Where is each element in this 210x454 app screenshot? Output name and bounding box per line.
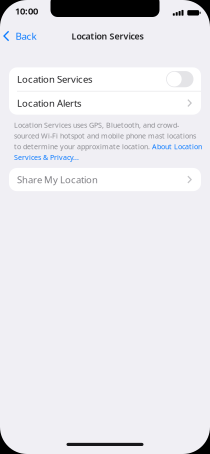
staticText: Location Services <box>71 30 143 42</box>
button[interactable]: Back <box>0 24 42 48</box>
staticText: sourced Wi-Fi hotspot and mobile phone m… <box>14 131 196 140</box>
staticText: Services & Privacy... <box>14 152 79 162</box>
button[interactable]: About Location <box>152 142 202 151</box>
button[interactable]: Location Services <box>9 67 201 91</box>
staticText: to determine your approximate location. <box>14 142 152 151</box>
button[interactable]: Share My Location <box>0 168 210 191</box>
staticText: Back <box>15 29 36 43</box>
staticText: Location Services uses GPS, Bluetooth, a… <box>14 120 179 130</box>
button[interactable]: Services & Privacy... <box>14 152 79 162</box>
staticText: About Location <box>152 142 202 151</box>
staticText: Location Alerts <box>17 97 82 109</box>
staticText: Location Services <box>17 73 93 86</box>
staticText: Share My Location <box>17 173 98 186</box>
button[interactable]: Location Alerts <box>9 91 201 115</box>
staticText: 10:00 <box>15 4 38 17</box>
